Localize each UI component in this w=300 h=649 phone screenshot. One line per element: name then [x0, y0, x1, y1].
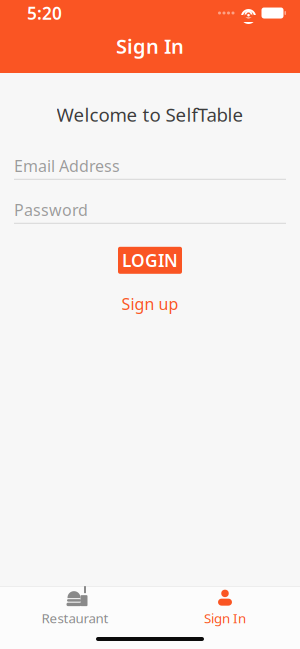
staticText: Sign up — [121, 293, 178, 314]
button[interactable]: Sign In — [0, 32, 300, 60]
button[interactable]: LOGIN — [118, 247, 182, 274]
button[interactable]: Restaurant — [0, 583, 150, 631]
staticText: Email Address — [14, 155, 120, 176]
staticText: Password — [14, 199, 88, 220]
staticText: Sign In — [116, 33, 184, 59]
staticText: Welcome to SelfTable — [56, 102, 243, 127]
staticText: Restaurant — [41, 609, 108, 627]
staticText: 5:20 — [27, 1, 62, 24]
staticText: Sign In — [204, 609, 246, 627]
button[interactable]: Sign In — [150, 583, 300, 631]
staticText: LOGIN — [122, 249, 178, 272]
button[interactable]: Sign up — [14, 294, 286, 314]
